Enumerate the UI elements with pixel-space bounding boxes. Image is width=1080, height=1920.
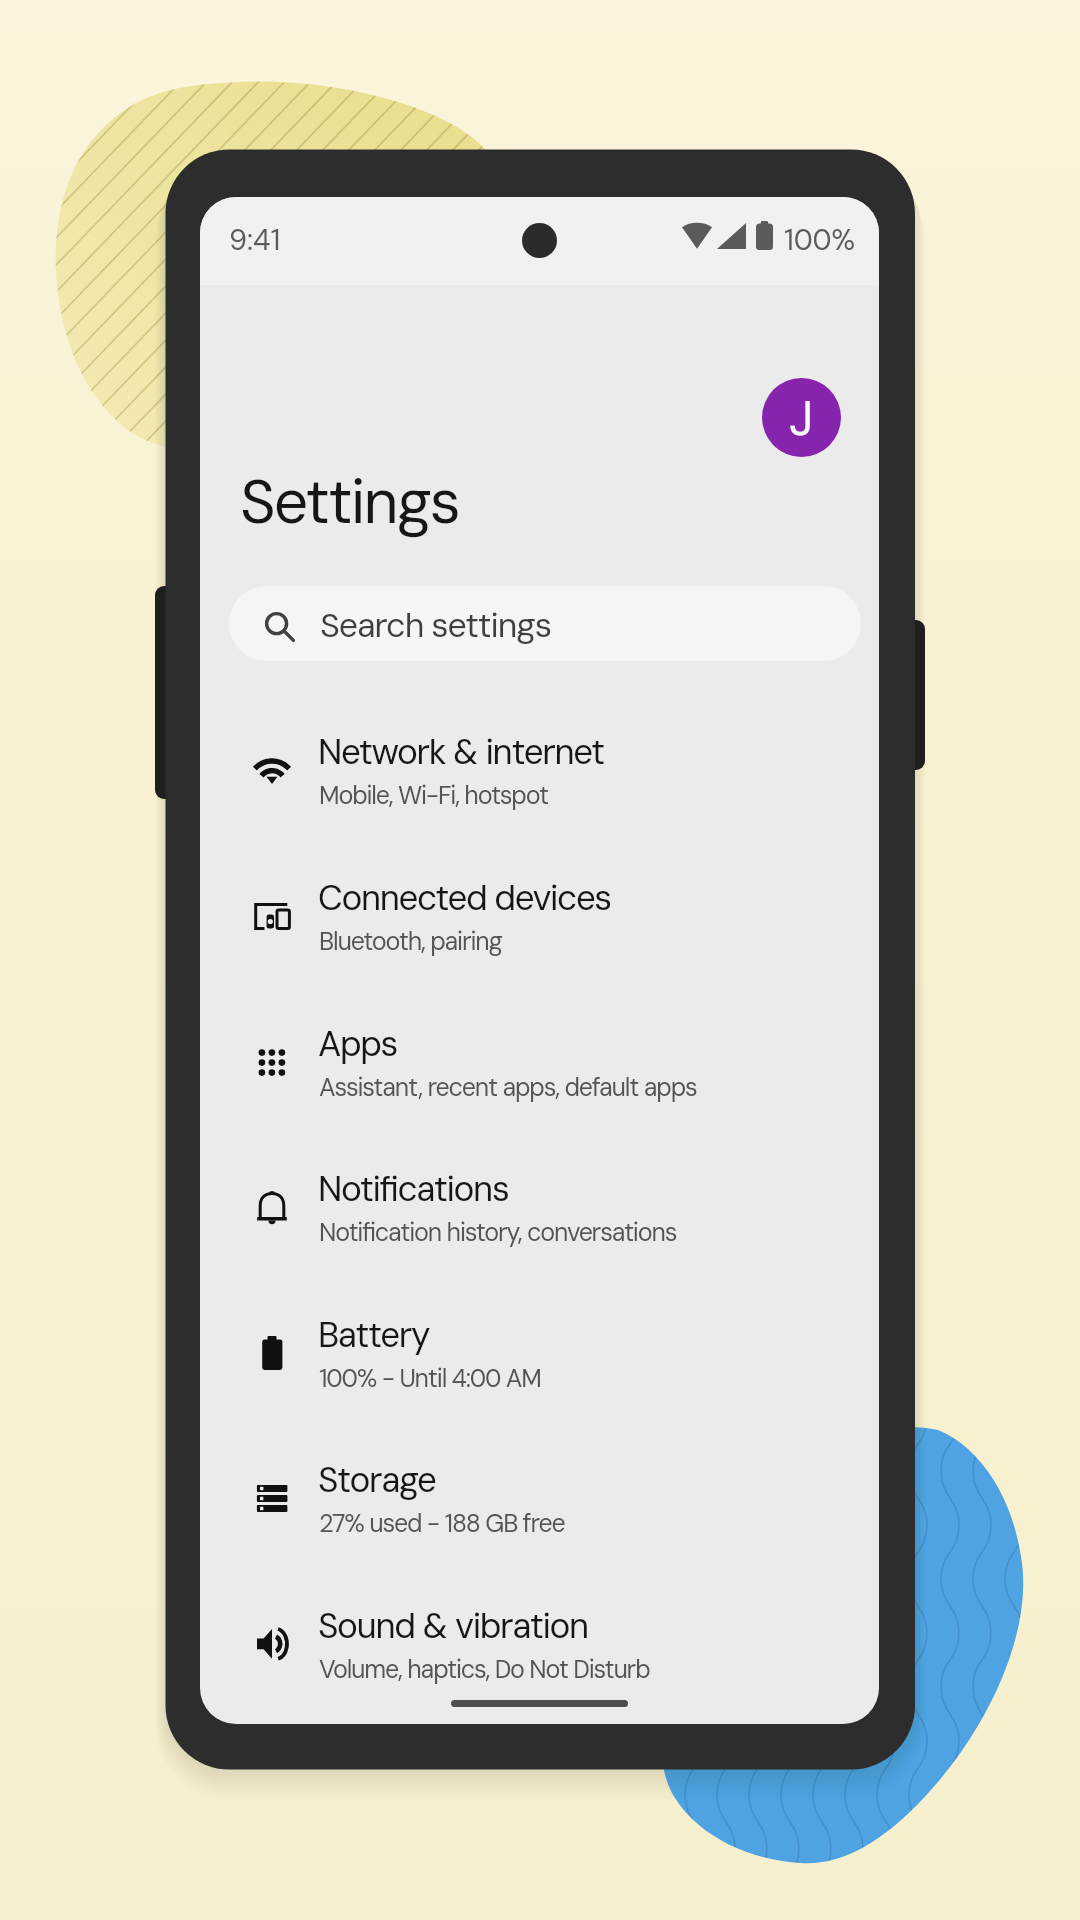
staticText: 100% - Until 4:00 AM (319, 1362, 541, 1395)
staticText: Connected devices (318, 875, 611, 921)
staticText: Bluetooth, pairing (319, 925, 502, 958)
staticText: Sound & vibration (318, 1603, 588, 1649)
button[interactable]: Connected devices (200, 843, 879, 989)
button[interactable]: Storage (200, 1425, 879, 1571)
button[interactable]: Notifications (200, 1134, 879, 1280)
staticText: Volume, haptics, Do Not Disturb (319, 1653, 650, 1686)
staticText: Notifications (318, 1166, 509, 1212)
staticText: Mobile, Wi-Fi, hotspot (319, 779, 548, 812)
staticText: Search settings (320, 603, 551, 647)
button[interactable]: Account (762, 378, 841, 457)
button[interactable]: Network & internet (200, 697, 879, 843)
staticText: Storage (318, 1457, 436, 1503)
staticText: Notification history, conversations (319, 1216, 677, 1249)
staticText: Assistant, recent apps, default apps (319, 1071, 697, 1104)
button[interactable]: Battery (200, 1280, 879, 1426)
button[interactable]: Sound & vibration (200, 1571, 879, 1717)
staticText: Battery (318, 1312, 430, 1358)
button[interactable]: Apps (200, 989, 879, 1135)
staticText: 100% (784, 221, 856, 259)
staticText: Apps (318, 1021, 398, 1067)
staticText: Network & internet (318, 729, 604, 775)
staticText: 27% used - 188 GB free (319, 1507, 565, 1540)
staticText: J (789, 387, 814, 449)
staticText: 9:41 (229, 221, 281, 259)
button[interactable]: Search settings (229, 586, 861, 661)
staticText: Settings (240, 462, 459, 541)
